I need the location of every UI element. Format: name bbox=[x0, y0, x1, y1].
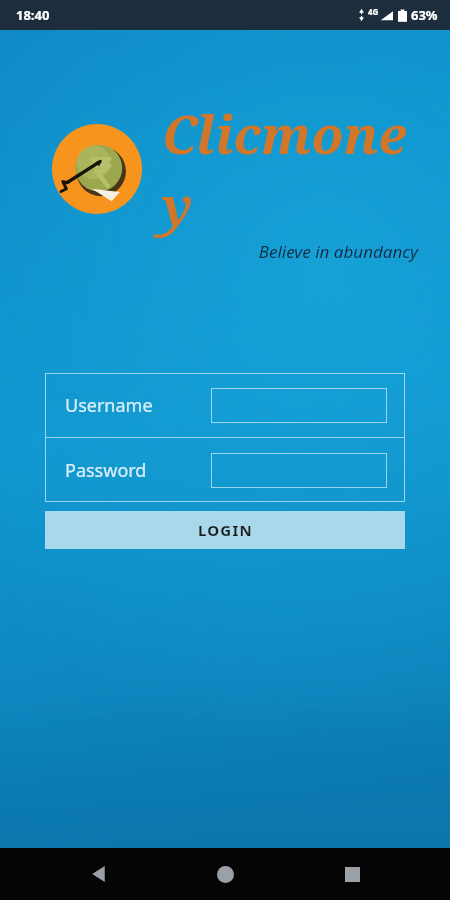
staticText: Username bbox=[65, 393, 153, 418]
staticText: Clicmoney bbox=[162, 98, 426, 240]
button[interactable]: Home bbox=[197, 848, 253, 900]
button[interactable]: Username bbox=[45, 373, 405, 437]
staticText: Believe in abundancy bbox=[0, 240, 418, 263]
other: Clicmoney logo bbox=[52, 124, 142, 214]
staticText: Password bbox=[65, 458, 147, 483]
button[interactable]: Back bbox=[71, 848, 127, 900]
staticText: 63% bbox=[411, 6, 438, 24]
button[interactable]: LOGIN bbox=[45, 511, 405, 549]
staticText: 4G bbox=[368, 6, 379, 17]
button[interactable]: Password bbox=[45, 438, 405, 502]
staticText: LOGIN bbox=[198, 520, 253, 540]
button[interactable]: Recent apps bbox=[324, 848, 380, 900]
staticText: 18:40 bbox=[16, 6, 50, 24]
